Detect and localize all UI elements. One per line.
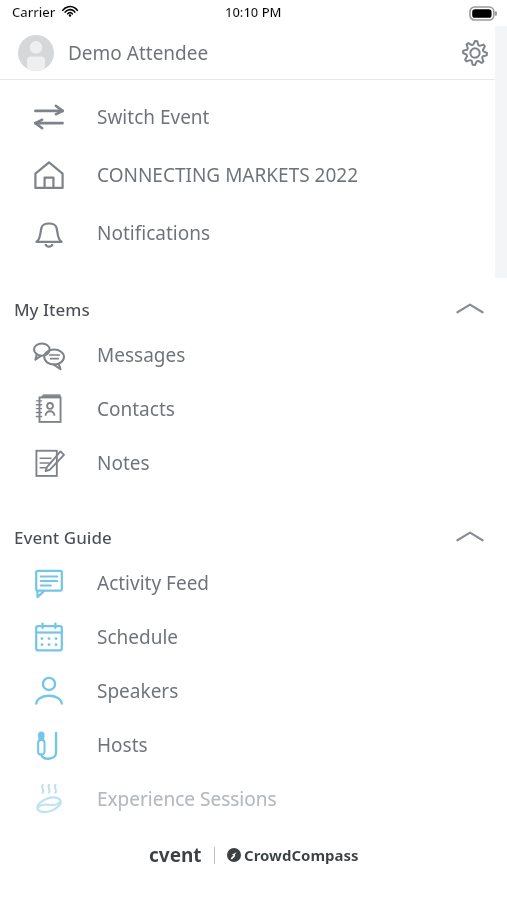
- staticText: Switch Event: [97, 104, 210, 130]
- staticText: CrowdCompass: [244, 845, 359, 865]
- button[interactable]: Messages: [0, 328, 507, 382]
- staticText: CONNECTING MARKETS 2022: [97, 162, 359, 188]
- button[interactable]: Demo Attendee: [0, 26, 507, 79]
- button[interactable]: Contacts: [0, 382, 507, 436]
- button[interactable]: Schedule: [0, 610, 507, 664]
- staticText: cvent: [149, 842, 202, 868]
- staticText: Notes: [97, 450, 150, 476]
- staticText: Activity Feed: [97, 570, 210, 596]
- staticText: Demo Attendee: [68, 40, 209, 66]
- staticText: Carrier: [12, 3, 56, 21]
- staticText: Contacts: [97, 396, 175, 422]
- button[interactable]: Settings: [451, 29, 499, 77]
- staticText: Hosts: [97, 732, 148, 758]
- button[interactable]: CONNECTING MARKETS 2022: [0, 146, 507, 204]
- button[interactable]: Notes: [0, 436, 507, 490]
- staticText: My Items: [14, 298, 90, 321]
- staticText: Notifications: [97, 220, 211, 246]
- button[interactable]: Hosts: [0, 718, 507, 772]
- staticText: Schedule: [97, 624, 179, 650]
- button[interactable]: Switch Event: [0, 88, 507, 146]
- staticText: Experience Sessions: [97, 786, 277, 812]
- button[interactable]: Experience Sessions: [0, 772, 507, 826]
- button[interactable]: Notifications: [0, 204, 507, 262]
- button[interactable]: My Items: [0, 290, 507, 328]
- button[interactable]: Activity Feed: [0, 556, 507, 610]
- staticText: Event Guide: [14, 526, 112, 549]
- staticText: Messages: [97, 342, 186, 368]
- button[interactable]: Speakers: [0, 664, 507, 718]
- staticText: Speakers: [97, 678, 179, 704]
- button[interactable]: Event Guide: [0, 518, 507, 556]
- staticText: 10:10 PM: [225, 3, 282, 21]
